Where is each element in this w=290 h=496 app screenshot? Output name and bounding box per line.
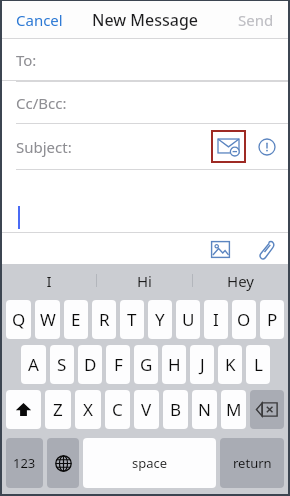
staticText: M xyxy=(226,398,242,421)
staticText: space xyxy=(132,454,168,472)
staticText: Hey xyxy=(227,271,254,291)
staticText: return xyxy=(233,454,272,472)
staticText: A xyxy=(28,353,39,376)
staticText: Send xyxy=(238,10,274,30)
button[interactable]: Backspace xyxy=(250,390,284,429)
staticText: W xyxy=(40,308,56,331)
staticText: G xyxy=(140,353,153,376)
button[interactable]: Switch keyboard xyxy=(47,438,79,488)
button[interactable]: H xyxy=(162,345,186,384)
button[interactable]: Insert photo xyxy=(206,235,234,263)
button[interactable]: Cancel xyxy=(8,4,71,36)
button[interactable]: M xyxy=(221,390,246,429)
button[interactable]: N xyxy=(192,390,217,429)
button[interactable]: Cc/Bcc: xyxy=(2,82,288,123)
button[interactable]: C xyxy=(105,390,130,429)
button[interactable]: K xyxy=(218,345,242,384)
staticText: U xyxy=(182,308,195,331)
button[interactable]: V xyxy=(134,390,159,429)
button[interactable]: A xyxy=(21,345,46,384)
staticText: K xyxy=(225,353,236,376)
staticText: B xyxy=(170,398,182,421)
button[interactable]: S xyxy=(50,345,74,384)
button[interactable]: B xyxy=(163,390,188,429)
button[interactable]: J xyxy=(190,345,214,384)
staticText: Q xyxy=(12,308,26,331)
staticText: N xyxy=(198,398,211,421)
staticText: To: xyxy=(16,50,37,70)
button[interactable]: Hi xyxy=(97,264,192,297)
button[interactable]: G xyxy=(134,345,158,384)
button[interactable]: space xyxy=(83,438,216,488)
staticText: P xyxy=(267,308,278,331)
button[interactable]: return xyxy=(220,438,284,488)
staticText: V xyxy=(141,398,152,421)
button[interactable]: D xyxy=(78,345,102,384)
button[interactable]: Mail encryption xyxy=(211,130,246,163)
staticText: T xyxy=(127,308,137,331)
staticText: R xyxy=(99,308,110,331)
staticText: C xyxy=(112,398,123,421)
button[interactable]: X xyxy=(75,390,101,429)
staticText: E xyxy=(71,308,81,331)
button[interactable]: To: xyxy=(2,39,288,80)
button[interactable]: R xyxy=(92,300,116,339)
staticText: Cancel xyxy=(16,10,63,30)
staticText: Z xyxy=(53,398,63,421)
button[interactable]: L xyxy=(246,345,270,384)
button[interactable]: Hey xyxy=(193,264,288,297)
button[interactable]: T xyxy=(120,300,144,339)
staticText: Hi xyxy=(137,271,152,291)
button[interactable]: O xyxy=(232,300,256,339)
button[interactable]: I xyxy=(2,264,96,297)
staticText: I xyxy=(213,308,219,331)
staticText: L xyxy=(254,353,263,376)
button[interactable]: U xyxy=(176,300,200,339)
button[interactable]: P xyxy=(260,300,284,339)
staticText: X xyxy=(83,398,93,421)
staticText: D xyxy=(84,353,97,376)
button[interactable] xyxy=(2,170,288,232)
staticText: Y xyxy=(155,308,165,331)
button[interactable]: Send xyxy=(230,4,282,36)
staticText: O xyxy=(237,308,251,331)
staticText: S xyxy=(57,353,67,376)
button[interactable]: Y xyxy=(148,300,172,339)
staticText: Cc/Bcc: xyxy=(16,93,67,113)
button[interactable]: Z xyxy=(45,390,71,429)
button[interactable]: I xyxy=(204,300,228,339)
button[interactable]: W xyxy=(35,300,60,339)
button[interactable]: Q xyxy=(6,300,31,339)
staticText: Subject: xyxy=(16,137,72,157)
button[interactable]: Info xyxy=(254,134,280,160)
button[interactable]: Attach file xyxy=(250,235,278,263)
staticText: 123 xyxy=(13,454,36,472)
staticText: F xyxy=(114,353,123,376)
button[interactable]: F xyxy=(106,345,130,384)
staticText: H xyxy=(168,353,181,376)
staticText: J xyxy=(200,353,205,376)
staticText: New Message xyxy=(92,9,199,31)
button[interactable]: E xyxy=(64,300,88,339)
button[interactable]: 123 xyxy=(6,438,43,488)
staticText: I xyxy=(46,271,52,291)
button[interactable]: Shift xyxy=(6,390,41,429)
